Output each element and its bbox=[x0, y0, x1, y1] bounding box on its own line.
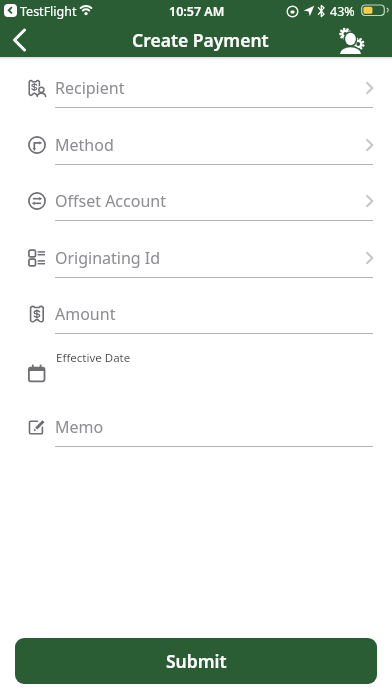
staticText: 43% bbox=[330, 3, 355, 20]
staticText: Memo bbox=[55, 416, 104, 438]
button[interactable] bbox=[4, 4, 17, 17]
staticText: Submit bbox=[166, 649, 227, 673]
staticText: TestFlight bbox=[20, 3, 77, 20]
button[interactable]: Recipient bbox=[16, 62, 376, 114]
button[interactable]: Memo bbox=[16, 401, 376, 453]
staticText: Amount bbox=[55, 303, 116, 325]
button[interactable]: Method bbox=[16, 119, 376, 171]
staticText: 10:57 AM bbox=[169, 3, 225, 20]
button[interactable]: Offset Account bbox=[16, 175, 376, 227]
staticText: Offset Account bbox=[55, 190, 166, 212]
button[interactable]: Amount bbox=[16, 288, 376, 340]
button[interactable]: Submit bbox=[15, 638, 377, 684]
button[interactable] bbox=[6, 26, 36, 54]
button[interactable]: Originating Id bbox=[16, 232, 376, 284]
button[interactable] bbox=[335, 25, 366, 56]
staticText: Effective Date bbox=[56, 350, 131, 366]
staticText: Recipient bbox=[55, 77, 125, 99]
staticText: Originating Id bbox=[55, 247, 161, 269]
staticText: Create Payment bbox=[132, 28, 269, 52]
staticText: Method bbox=[55, 134, 114, 156]
button[interactable]: Effective Date bbox=[16, 344, 376, 392]
